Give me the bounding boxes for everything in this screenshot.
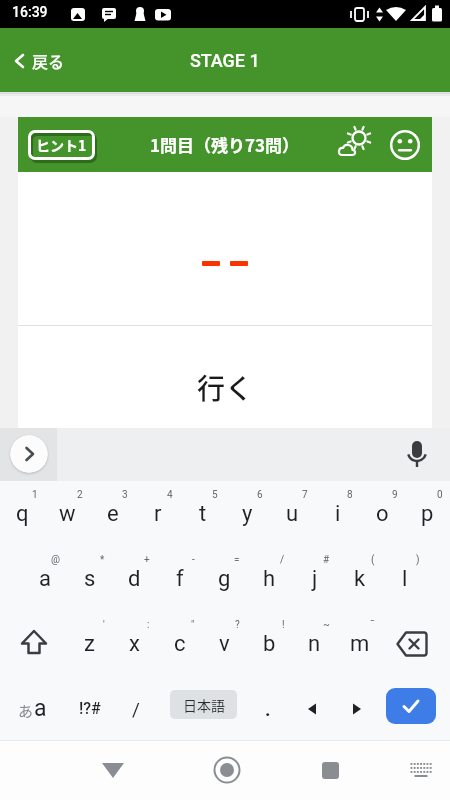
staticText: ' — [103, 619, 105, 631]
staticText: あ — [18, 700, 34, 722]
staticText: ~ — [323, 619, 330, 631]
button[interactable]: i — [315, 481, 360, 546]
staticText: 5 — [212, 489, 218, 501]
staticText: 1 — [32, 489, 38, 501]
button[interactable]: k — [337, 546, 382, 611]
staticText: : — [147, 619, 150, 631]
button[interactable] — [404, 440, 430, 470]
staticText: . — [265, 698, 271, 720]
staticText: 9 — [392, 489, 398, 501]
staticText: ヒント1 — [36, 135, 87, 155]
button[interactable]: !?# — [65, 676, 115, 741]
staticText: q — [16, 501, 29, 527]
staticText: ) — [416, 554, 420, 566]
button[interactable]: g — [202, 546, 247, 611]
button[interactable]: l — [382, 546, 427, 611]
button[interactable]: a — [22, 546, 67, 611]
staticText: v — [219, 631, 230, 657]
staticText: i — [335, 501, 341, 527]
staticText: !?# — [79, 699, 101, 718]
staticText: " — [191, 619, 195, 631]
button[interactable]: あ — [6, 676, 58, 741]
button[interactable] — [337, 676, 377, 741]
button[interactable]: z — [67, 611, 112, 676]
staticText: / — [132, 698, 140, 720]
staticText: k — [354, 566, 366, 592]
button[interactable] — [292, 676, 332, 741]
button[interactable]: q — [0, 481, 45, 546]
staticText: 行く — [18, 367, 432, 408]
button[interactable]: f — [157, 546, 202, 611]
staticText: a — [39, 566, 51, 592]
staticText: 7 — [302, 489, 308, 501]
button[interactable]: h — [247, 546, 292, 611]
staticText: w — [59, 501, 76, 527]
staticText: t — [199, 501, 207, 527]
button[interactable]: s — [67, 546, 112, 611]
staticText: / — [280, 554, 285, 566]
staticText: 1問目（残り73問） — [150, 132, 300, 157]
button[interactable] — [378, 611, 446, 676]
staticText: ¯ — [370, 619, 375, 631]
staticText: a — [34, 695, 47, 722]
staticText: 3 — [122, 489, 128, 501]
staticText: c — [174, 631, 186, 657]
staticText: 日本語 — [183, 695, 225, 715]
button[interactable]: m — [337, 611, 382, 676]
button[interactable]: n — [292, 611, 337, 676]
button[interactable]: 戻る — [12, 49, 65, 72]
staticText: g — [218, 566, 231, 592]
button[interactable]: d — [112, 546, 157, 611]
staticText: * — [100, 554, 105, 566]
staticText: + — [144, 554, 150, 566]
button[interactable] — [211, 755, 243, 785]
button[interactable]: / — [115, 676, 157, 741]
button[interactable]: j — [292, 546, 337, 611]
staticText: e — [107, 501, 119, 527]
button[interactable]: x — [112, 611, 157, 676]
button[interactable] — [386, 688, 436, 724]
button[interactable]: u — [270, 481, 315, 546]
staticText: 16:39 — [12, 4, 48, 20]
button[interactable] — [338, 126, 374, 162]
staticText: x — [129, 631, 140, 657]
button[interactable]: y — [225, 481, 270, 546]
button[interactable]: ヒント1 — [28, 130, 95, 160]
staticText: s — [84, 566, 96, 592]
button[interactable] — [389, 129, 421, 161]
staticText: f — [176, 566, 184, 592]
staticText: z — [84, 631, 95, 657]
staticText: ( — [371, 554, 375, 566]
button[interactable]: p — [405, 481, 450, 546]
button[interactable]: t — [180, 481, 225, 546]
staticText: ! — [282, 619, 285, 631]
button[interactable] — [97, 755, 129, 785]
staticText: y — [242, 501, 253, 527]
button[interactable]: e — [90, 481, 135, 546]
button[interactable] — [10, 435, 48, 473]
button[interactable]: 日本語 — [170, 690, 237, 719]
button[interactable]: . — [248, 676, 288, 741]
staticText: ? — [235, 619, 240, 631]
button[interactable] — [405, 755, 437, 785]
staticText: @ — [51, 554, 60, 566]
staticText: 8 — [347, 489, 353, 501]
staticText: - — [192, 554, 195, 566]
button[interactable]: c — [157, 611, 202, 676]
staticText: n — [308, 631, 321, 657]
staticText: 4 — [167, 489, 173, 501]
staticText: 0 — [437, 489, 443, 501]
button[interactable]: w — [45, 481, 90, 546]
button[interactable]: o — [360, 481, 405, 546]
staticText: l — [402, 566, 408, 592]
staticText: r — [154, 501, 162, 527]
staticText: b — [263, 631, 276, 657]
button[interactable] — [0, 611, 67, 676]
staticText: 2 — [77, 489, 83, 501]
button[interactable]: b — [247, 611, 292, 676]
button[interactable] — [314, 755, 346, 785]
staticText: m — [350, 631, 370, 657]
button[interactable]: v — [202, 611, 247, 676]
staticText: 6 — [257, 489, 263, 501]
button[interactable]: r — [135, 481, 180, 546]
